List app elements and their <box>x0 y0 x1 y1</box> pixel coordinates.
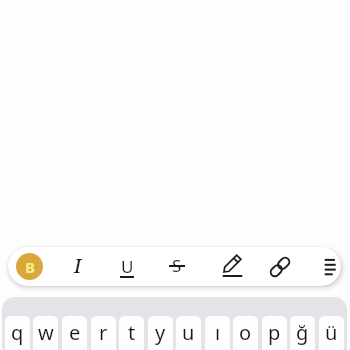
staticText: ğ <box>296 319 309 346</box>
button[interactable]: S <box>156 246 198 285</box>
staticText: B <box>25 257 35 277</box>
staticText: p <box>268 319 281 346</box>
button[interactable]: t <box>119 316 144 350</box>
staticText: ı <box>215 319 221 346</box>
staticText: I <box>74 253 82 279</box>
button[interactable]: y <box>148 316 173 350</box>
staticText: o <box>239 319 252 346</box>
button[interactable]: B <box>9 247 49 286</box>
staticText: u <box>182 319 195 346</box>
button[interactable]: u <box>176 316 201 350</box>
button[interactable] <box>258 247 302 286</box>
button[interactable]: U <box>106 247 148 286</box>
button[interactable]: ı <box>205 316 230 350</box>
button[interactable]: o <box>233 316 258 350</box>
button[interactable]: r <box>91 316 116 350</box>
staticText: S <box>172 254 182 277</box>
button[interactable]: I <box>57 246 99 285</box>
button[interactable]: q <box>5 316 30 350</box>
staticText: y <box>155 319 166 346</box>
button[interactable]: e <box>62 316 87 350</box>
button[interactable]: ü <box>319 316 344 350</box>
staticText: w <box>38 319 54 346</box>
staticText: e <box>69 319 81 346</box>
staticText: q <box>11 319 24 346</box>
staticText: r <box>99 319 108 346</box>
button[interactable]: ğ <box>290 316 315 350</box>
staticText: U <box>121 255 134 278</box>
button[interactable] <box>209 247 253 286</box>
staticText: t <box>128 319 136 346</box>
button[interactable]: w <box>33 316 58 350</box>
staticText: ü <box>325 319 338 346</box>
button[interactable]: p <box>262 316 287 350</box>
button[interactable] <box>312 247 348 286</box>
